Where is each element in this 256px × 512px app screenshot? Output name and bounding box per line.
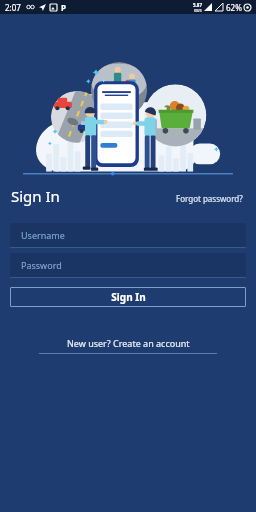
button[interactable]: Forgot password? — [174, 191, 245, 206]
staticText: New user? Create an account — [67, 337, 190, 349]
staticText: Sign In — [11, 186, 60, 206]
button[interactable]: New user? Create an account — [61, 335, 196, 351]
staticText: Sign In — [111, 290, 146, 304]
staticText: Password — [21, 259, 62, 271]
staticText: Forgot password? — [176, 193, 243, 204]
staticText: KB/S — [194, 8, 202, 13]
staticText: P — [61, 2, 66, 13]
button[interactable]: Sign In — [10, 287, 246, 307]
button[interactable]: Username — [10, 223, 246, 248]
button[interactable]: Password — [10, 253, 246, 278]
staticText: 5.87 — [193, 2, 202, 8]
staticText: 2:07 — [5, 2, 21, 13]
staticText: 62% — [226, 2, 242, 13]
staticText: Username — [21, 229, 65, 241]
